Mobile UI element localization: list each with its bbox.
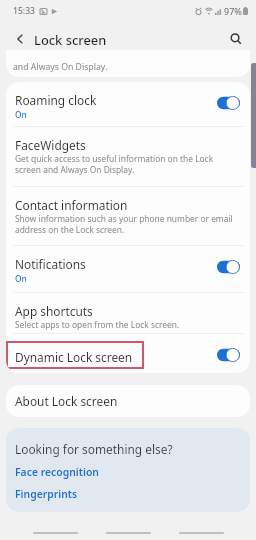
button[interactable]: Recents	[32, 525, 78, 540]
staticText: Lock screen	[34, 31, 107, 49]
staticText: On	[15, 109, 27, 120]
staticText: Contact information	[15, 197, 128, 213]
staticText: Dynamic Lock screen	[15, 349, 133, 365]
staticText: and Always On Display.	[13, 61, 108, 73]
staticText: Show information such as your phone numb…	[15, 213, 233, 235]
button[interactable]	[6, 250, 250, 288]
button[interactable]	[6, 191, 250, 235]
button[interactable]: On	[217, 96, 240, 110]
button[interactable]: Back	[178, 525, 224, 540]
staticText: Select apps to open from the Lock screen…	[15, 319, 180, 330]
button[interactable]	[6, 131, 250, 175]
staticText: 97%	[224, 5, 242, 17]
staticText: About Lock screen	[15, 393, 118, 409]
staticText: Roaming clock	[15, 92, 97, 108]
staticText: Fingerprints	[15, 487, 78, 501]
button[interactable]	[6, 297, 250, 341]
staticText: Get quick access to useful information o…	[15, 153, 214, 175]
button[interactable]: On	[217, 348, 240, 362]
button[interactable]: Search	[222, 25, 250, 53]
button[interactable]: On	[217, 260, 240, 274]
staticText: On	[15, 273, 27, 284]
staticText: Face recognition	[15, 465, 99, 479]
button[interactable]: About Lock screen	[6, 385, 250, 417]
button[interactable]: Dynamic Lock screen	[6, 337, 250, 373]
button[interactable]: Navigate up	[6, 25, 34, 53]
staticText: App shortcuts	[15, 303, 93, 319]
button[interactable]: Fingerprints	[15, 487, 78, 501]
button[interactable]	[6, 86, 250, 124]
staticText: FaceWidgets	[15, 137, 86, 153]
staticText: Notifications	[15, 256, 86, 272]
button[interactable]: Face recognition	[15, 465, 99, 479]
staticText: 15:33	[13, 5, 36, 17]
staticText: Looking for something else?	[15, 441, 173, 457]
button[interactable]: Home	[105, 525, 151, 540]
